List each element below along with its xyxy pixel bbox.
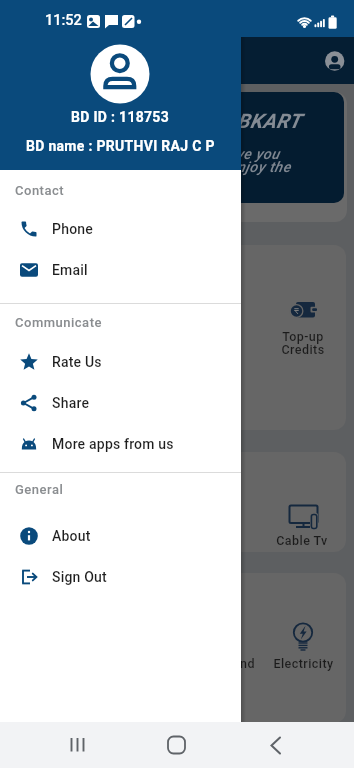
staticText: Contact — [15, 183, 65, 198]
button[interactable]: Rate Us — [0, 341, 241, 382]
button[interactable]: BKART — [8, 92, 344, 203]
staticText: Share — [52, 395, 90, 411]
staticText: Top-up — [282, 329, 324, 344]
staticText: Rate Us — [52, 354, 102, 370]
button[interactable] — [323, 49, 347, 73]
button[interactable] — [8, 452, 346, 552]
staticText: njoy the — [237, 159, 291, 176]
staticText: BD ID : 118753 — [71, 109, 170, 125]
button[interactable]: Share — [0, 382, 241, 423]
staticText: 11:52 — [45, 12, 82, 29]
button[interactable]: More apps from us — [0, 423, 241, 464]
staticText: nd — [240, 656, 256, 671]
staticText: BKART — [237, 109, 302, 132]
staticText: Electricity — [273, 656, 334, 671]
button[interactable]: Email — [0, 249, 241, 290]
staticText: Credits — [281, 342, 325, 357]
staticText: More apps from us — [52, 436, 174, 452]
staticText: Email — [52, 262, 88, 278]
button[interactable]: About — [0, 515, 241, 556]
button[interactable]: Phone — [0, 208, 241, 249]
staticText: Sign Out — [52, 569, 107, 585]
staticText: Cable Tv — [276, 533, 328, 548]
staticText: ve you — [236, 146, 280, 163]
staticText: General — [15, 482, 64, 497]
staticText: About — [52, 528, 91, 544]
button[interactable] — [8, 573, 346, 723]
button[interactable] — [157, 722, 197, 764]
staticText: Phone — [52, 221, 93, 237]
staticText: Communicate — [15, 315, 102, 330]
button[interactable] — [256, 722, 296, 764]
button[interactable] — [58, 722, 98, 764]
button[interactable]: Sign Out — [0, 556, 241, 597]
staticText: BD name : PRUTHVI RAJ C P — [26, 138, 215, 154]
button[interactable] — [8, 245, 346, 430]
